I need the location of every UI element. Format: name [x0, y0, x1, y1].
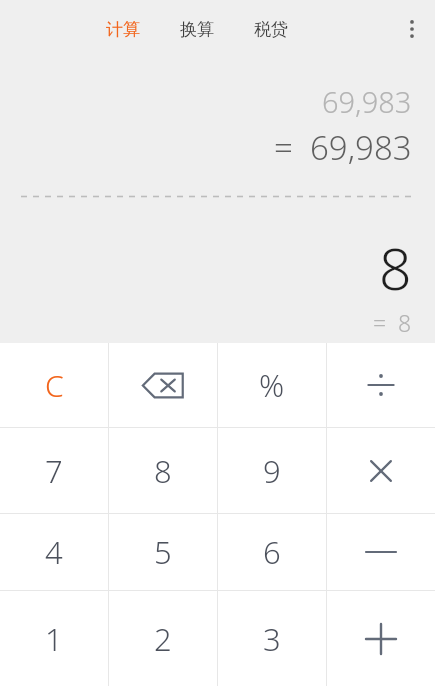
other: Multiply	[368, 458, 394, 484]
staticText: C	[45, 365, 64, 406]
staticText: 4	[45, 531, 63, 573]
other: Plus	[366, 624, 396, 654]
staticText: 7	[45, 450, 63, 492]
button[interactable]: 换算	[174, 11, 220, 48]
staticText: 8	[154, 450, 172, 492]
staticText: 8	[379, 229, 412, 307]
button[interactable]: 9	[218, 428, 326, 513]
staticText: 1	[45, 618, 63, 660]
other: Minus	[366, 550, 396, 554]
staticText: 5	[154, 531, 172, 573]
button[interactable]: 1	[0, 591, 108, 686]
staticText: 69,983	[322, 82, 412, 121]
button[interactable]: 7	[0, 428, 108, 513]
button[interactable]: C	[0, 343, 108, 427]
staticText: 9	[263, 450, 281, 492]
other: Backspace	[142, 372, 184, 399]
staticText: 计算	[106, 19, 140, 40]
staticText: = 8	[373, 307, 412, 338]
button[interactable]: 3	[218, 591, 326, 686]
button[interactable]: Multiply	[327, 428, 435, 513]
staticText: 换算	[180, 19, 214, 40]
button[interactable]: 税贷	[248, 11, 294, 48]
staticText: 3	[263, 618, 281, 660]
button[interactable]: Plus	[327, 591, 435, 686]
button[interactable]: More options	[389, 6, 435, 52]
button[interactable]: Divide	[327, 343, 435, 427]
staticText: %	[259, 364, 285, 406]
button[interactable]: 8	[109, 428, 217, 513]
staticText: 2	[154, 618, 172, 660]
button[interactable]: Minus	[327, 514, 435, 590]
staticText: = 69,983	[274, 125, 412, 170]
other: Divide	[366, 370, 396, 400]
staticText: 6	[263, 531, 281, 573]
staticText: 税贷	[254, 19, 288, 40]
button[interactable]: %	[218, 343, 326, 427]
button[interactable]: 计算	[100, 11, 146, 48]
button[interactable]: Backspace	[109, 343, 217, 427]
button[interactable]: 2	[109, 591, 217, 686]
button[interactable]: 5	[109, 514, 217, 590]
button[interactable]: 6	[218, 514, 326, 590]
button[interactable]: 4	[0, 514, 108, 590]
